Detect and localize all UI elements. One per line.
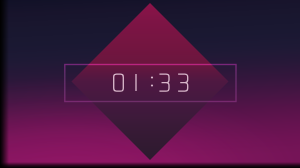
button[interactable]: Timer, 01:33 remaining <box>0 0 300 168</box>
